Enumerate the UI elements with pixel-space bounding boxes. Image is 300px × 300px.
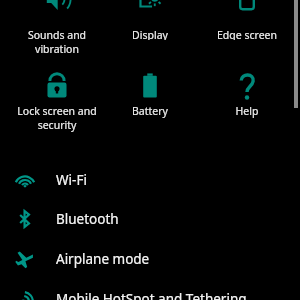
staticText: Help <box>199 104 295 118</box>
button[interactable]: Sounds and vibration <box>9 0 105 54</box>
button[interactable]: Lock screen and security <box>9 69 105 141</box>
staticText: Sounds and <box>9 28 105 42</box>
staticText: Airplane mode <box>56 250 150 268</box>
button[interactable]: Display <box>102 0 198 40</box>
staticText: Mobile HotSpot and Tethering <box>56 290 247 300</box>
staticText: Wi-Fi <box>56 171 87 189</box>
staticText: vibration <box>9 42 105 54</box>
staticText: Lock screen and <box>9 104 105 118</box>
button[interactable]: Battery <box>102 69 198 127</box>
button[interactable]: Wi-Fi <box>0 160 300 199</box>
button[interactable]: Edge screen <box>199 0 295 40</box>
staticText: Battery <box>102 104 198 118</box>
staticText: Edge screen <box>199 28 295 40</box>
staticText: security <box>9 118 105 132</box>
staticText: Bluetooth <box>56 210 119 228</box>
button[interactable]: Mobile HotSpot and Tethering <box>0 279 300 300</box>
button[interactable]: Airplane mode <box>0 239 300 278</box>
staticText: Display <box>102 28 198 40</box>
button[interactable]: Help <box>199 69 295 127</box>
button[interactable]: Bluetooth <box>0 199 300 238</box>
